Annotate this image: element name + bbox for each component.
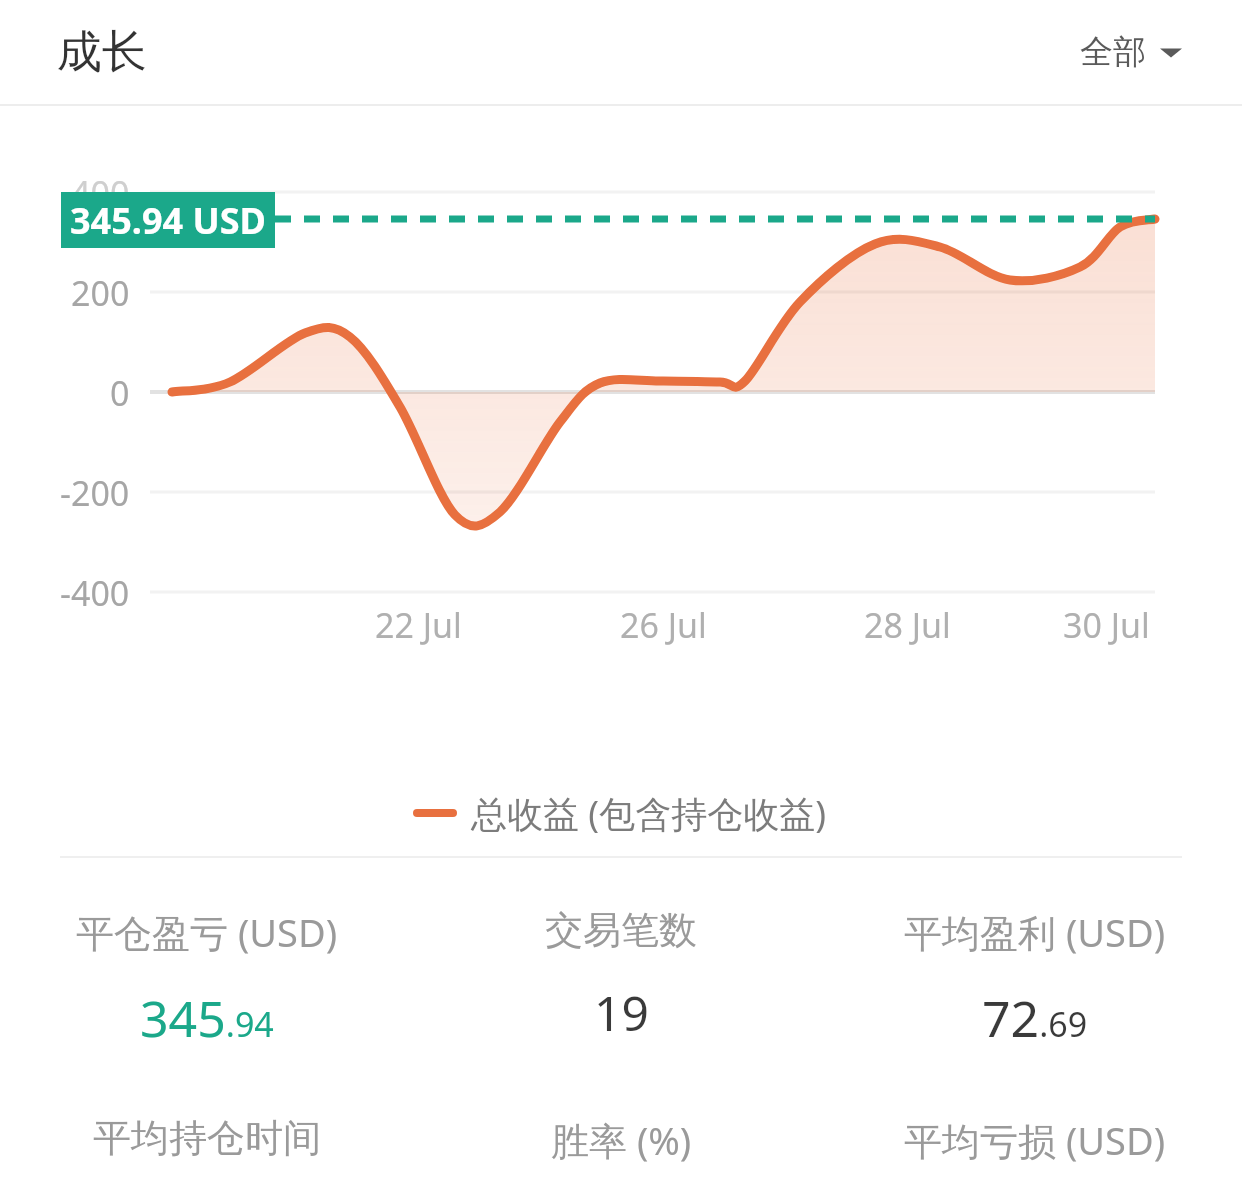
staticText: 交易笔数 bbox=[545, 906, 697, 954]
button[interactable]: Current value 345.94 USD bbox=[61, 192, 275, 248]
staticText: 成长 bbox=[57, 24, 147, 81]
staticText: 72.69 bbox=[982, 984, 1088, 1052]
staticText: 平均持仓时间 bbox=[93, 1114, 321, 1162]
staticText: 全部 bbox=[1080, 31, 1146, 73]
staticText: 26 Jul bbox=[620, 602, 707, 648]
staticText: 平均盈利 (USD) bbox=[904, 906, 1166, 958]
staticText: 平仓盈亏 (USD) bbox=[76, 906, 338, 958]
button[interactable]: 平均盈利 (USD) bbox=[828, 906, 1242, 1052]
button[interactable]: 胜率 (%) bbox=[414, 1114, 828, 1177]
button[interactable]: 交易笔数 bbox=[414, 906, 828, 1045]
staticText: 30 Jul bbox=[1063, 602, 1150, 648]
staticText: 345.94 USD bbox=[70, 196, 266, 245]
staticText: 总收益 (包含持仓收益) bbox=[471, 789, 826, 838]
staticText: 胜率 (%) bbox=[551, 1114, 692, 1166]
button[interactable]: 全部 bbox=[1072, 23, 1190, 81]
staticText: 200 bbox=[71, 270, 130, 316]
staticText: -200 bbox=[60, 470, 130, 516]
staticText: 345.94 bbox=[140, 984, 274, 1052]
staticText: 平均亏损 (USD) bbox=[904, 1114, 1166, 1166]
staticText: 19 bbox=[594, 980, 649, 1045]
staticText: 28 Jul bbox=[864, 602, 951, 648]
button[interactable]: 平仓盈亏 (USD) bbox=[0, 906, 414, 1052]
staticText: -400 bbox=[60, 570, 130, 616]
staticText: 22 Jul bbox=[375, 602, 462, 648]
staticText: 0 bbox=[110, 370, 130, 416]
staticText: 400 bbox=[71, 170, 130, 216]
button[interactable]: 平均持仓时间 bbox=[0, 1114, 414, 1177]
button[interactable]: 平均亏损 (USD) bbox=[828, 1114, 1242, 1177]
